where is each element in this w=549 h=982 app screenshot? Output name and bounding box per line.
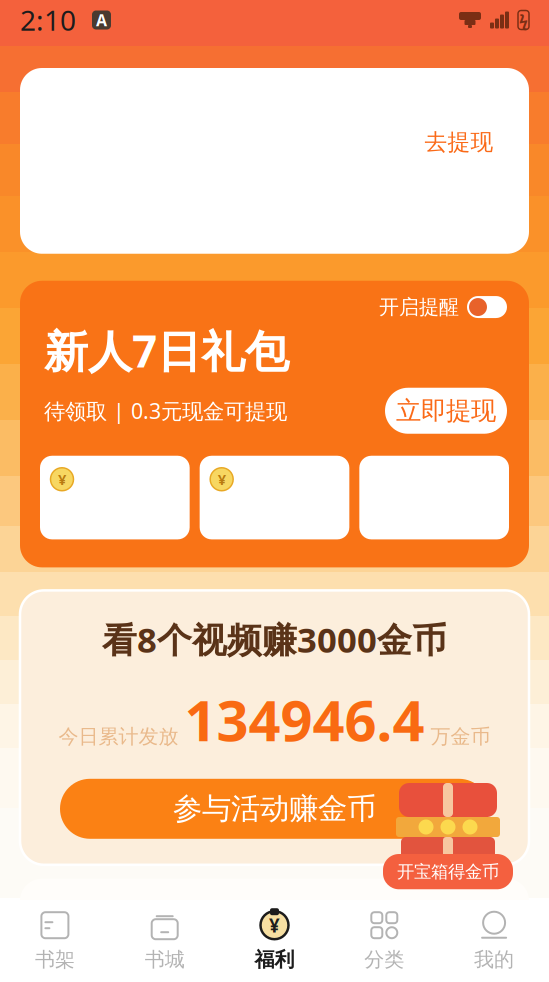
button[interactable]: ¥ bbox=[220, 900, 329, 982]
staticText: ¥ bbox=[269, 913, 280, 938]
staticText: 万金币 bbox=[430, 724, 490, 749]
staticText: 今日累计发放 bbox=[58, 724, 178, 749]
button[interactable]: ¥ bbox=[200, 456, 349, 539]
staticText: 分类 bbox=[364, 947, 404, 972]
staticText: 待领取 | 0.3元现金可提现 bbox=[44, 397, 287, 425]
staticText: 开宝箱得金币 bbox=[397, 861, 499, 882]
staticText: ¥ bbox=[218, 469, 226, 489]
staticText: 新人7日礼包 bbox=[44, 321, 289, 380]
staticText: 我的 bbox=[474, 947, 514, 972]
staticText: 去提现 bbox=[424, 128, 493, 156]
button[interactable]: 50 bbox=[359, 456, 509, 539]
staticText: 书架 bbox=[35, 947, 75, 972]
button[interactable]: 书架 bbox=[0, 900, 110, 982]
staticText: 书城 bbox=[145, 947, 185, 972]
staticText: ¥ bbox=[58, 469, 66, 489]
staticText: 看8个视频赚3000金币 bbox=[102, 616, 447, 662]
button[interactable]: 立即提现 bbox=[385, 388, 507, 434]
button[interactable]: 书城 bbox=[110, 900, 220, 982]
staticText: A bbox=[96, 9, 107, 31]
staticText: 参与活动赚金币 bbox=[173, 791, 376, 827]
staticText: ϟ bbox=[519, 9, 528, 31]
button[interactable]: ¥ bbox=[40, 456, 190, 539]
staticText: 福利 bbox=[254, 947, 294, 972]
button[interactable]: 开启提醒 bbox=[379, 295, 507, 319]
staticText: 2:10 bbox=[20, 1, 76, 39]
staticText: 134946.4 bbox=[184, 682, 424, 757]
staticText: 开启提醒 bbox=[379, 295, 459, 319]
button[interactable]: 我的 bbox=[439, 900, 549, 982]
staticText: 看视频赚金币与声望 bbox=[36, 913, 261, 944]
button[interactable]: 分类 bbox=[329, 900, 439, 982]
staticText: 立即提现 bbox=[396, 395, 496, 426]
button[interactable]: 参与活动赚金币 bbox=[60, 779, 489, 839]
button[interactable]: 去提现 bbox=[415, 123, 503, 161]
button[interactable]: 开宝箱得金币 bbox=[383, 782, 513, 889]
